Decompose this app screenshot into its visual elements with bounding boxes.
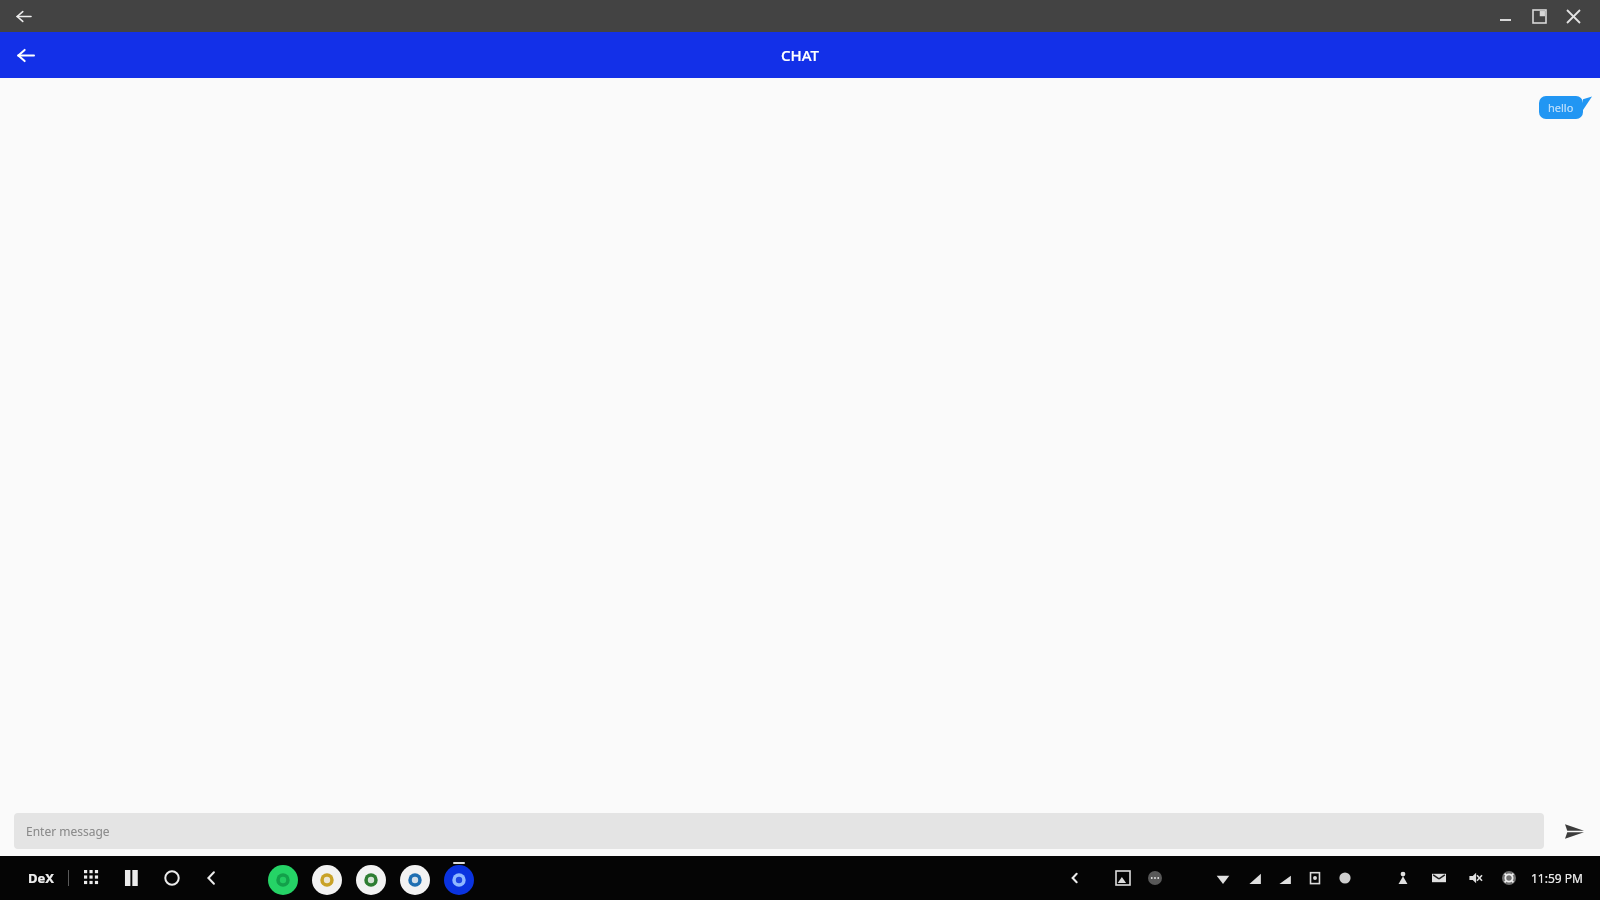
staticText: Enter message — [26, 823, 110, 839]
button[interactable]: Signal 2 — [1274, 867, 1296, 889]
button[interactable]: Browser — [356, 865, 386, 895]
staticText: 11:59 PM — [1531, 870, 1583, 886]
button[interactable]: Back — [199, 865, 225, 891]
button[interactable]: SIM — [1304, 867, 1326, 889]
button[interactable]: Close — [1556, 2, 1590, 30]
button[interactable]: Home — [159, 865, 185, 891]
button[interactable]: Screenshot — [1112, 867, 1134, 889]
button[interactable]: 11:59 PM — [1528, 864, 1586, 892]
button[interactable]: Gallery — [312, 865, 342, 895]
button[interactable]: DeX — [24, 863, 58, 893]
button[interactable]: Minimize — [1488, 2, 1522, 30]
button[interactable]: Signal — [1244, 867, 1266, 889]
button[interactable]: Back — [1064, 867, 1086, 889]
staticText: hello — [1548, 100, 1574, 115]
button[interactable]: Messages — [1428, 867, 1450, 889]
button[interactable]: Camera — [400, 865, 430, 895]
staticText: CHAT — [781, 45, 819, 65]
button[interactable]: More — [1144, 867, 1166, 889]
staticText: DeX — [28, 869, 54, 887]
button[interactable]: WhatsApp — [268, 865, 298, 895]
button[interactable]: hello — [1539, 96, 1583, 119]
button[interactable]: Apps — [79, 865, 105, 891]
button[interactable]: Send — [1554, 811, 1594, 851]
button[interactable]: Maximize — [1522, 2, 1556, 30]
button[interactable]: Bluetooth — [1392, 867, 1414, 889]
button[interactable]: Back — [8, 1, 38, 31]
button[interactable]: Accessibility — [1498, 867, 1520, 889]
button[interactable]: Navigate up — [8, 38, 42, 72]
button[interactable]: Recents — [119, 865, 145, 891]
button[interactable]: Mute — [1464, 867, 1486, 889]
button[interactable]: Wi-Fi — [1212, 867, 1234, 889]
button[interactable]: Chat — [444, 865, 474, 895]
button[interactable]: Enter message — [14, 813, 1544, 849]
button[interactable]: Battery — [1334, 867, 1356, 889]
